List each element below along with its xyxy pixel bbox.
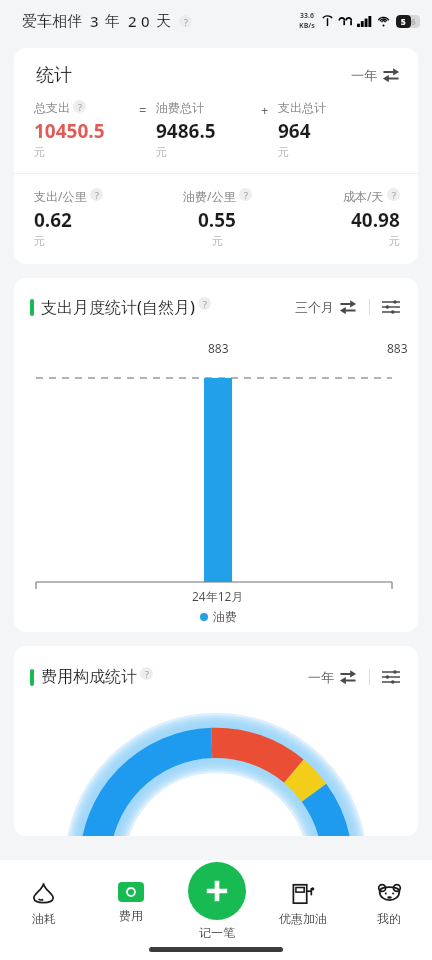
staticText: 883 [208,340,229,356]
button[interactable]: 我的 [346,860,432,926]
staticText: 总支出 [34,100,70,115]
staticText: 33.6 [300,11,314,21]
staticText: 一年 [308,669,334,685]
button[interactable]: 一年 [349,62,402,88]
button[interactable]: 成本/天 [278,188,400,248]
button[interactable]: 一年 [306,664,359,690]
staticText: 油费 [213,609,237,624]
button[interactable]: 支出总计 [278,100,402,159]
staticText: 0.55 [198,207,236,233]
staticText: 2 [128,11,137,31]
staticText: ? [78,101,82,113]
button[interactable]: Help [387,188,400,201]
staticText: 6 [411,16,416,27]
button[interactable]: 油耗 [0,860,87,926]
button[interactable]: Help [73,100,86,113]
staticText: 三个月 [295,299,334,315]
staticText: 5 [401,16,406,27]
staticText: 40.98 [351,207,400,233]
button[interactable]: Help [179,15,192,28]
button[interactable]: 费用 [87,860,174,923]
staticText: 统计 [36,64,72,87]
staticText: 成本/天 [343,188,384,204]
staticText: 元 [34,234,45,248]
button[interactable]: 总支出 [34,100,130,159]
staticText: 10450.5 [34,118,105,144]
staticText: 我的 [377,911,401,926]
staticText: 964 [278,118,311,144]
staticText: 元 [278,145,289,159]
button[interactable]: 记一笔 [174,860,260,938]
button[interactable]: 优惠加油 [260,860,346,926]
other: 记一笔 [188,862,246,920]
staticText: 24年12月 [192,588,244,604]
staticText: 支出总计 [278,100,326,115]
staticText: 元 [212,234,223,248]
staticText: 0 [141,11,150,31]
staticText: 883 [387,340,408,356]
button[interactable]: Filter settings [380,666,402,688]
staticText: ? [145,668,149,680]
staticText: ? [184,16,188,28]
staticText: 油费总计 [156,100,204,115]
staticText: 费用构成统计 [41,667,137,687]
staticText: 费用 [119,908,143,923]
button[interactable]: 三个月 [293,294,359,320]
staticText: KB/s [299,21,315,31]
staticText: ? [203,298,207,310]
staticText: 油费/公里 [183,188,236,204]
staticText: 3 [90,11,99,31]
button[interactable]: Filter settings [380,296,402,318]
staticText: 支出/公里 [34,188,87,204]
staticText: 记一笔 [199,925,235,938]
staticText: 支出月度统计(自然月) [41,296,195,318]
staticText: ? [95,189,99,201]
staticText: 元 [34,145,45,159]
button[interactable]: Help [140,667,153,680]
staticText: 年 [105,12,120,31]
staticText: 元 [389,234,400,248]
staticText: 9486.5 [156,118,216,144]
staticText: 天 [156,12,171,31]
button[interactable]: Help [90,188,103,201]
staticText: 一年 [351,67,377,83]
button[interactable]: Help [239,188,252,201]
button[interactable]: 油费总计 [156,100,252,159]
staticText: 爱车相伴 [22,12,82,31]
button[interactable]: 油费/公里 [156,188,278,248]
button[interactable]: 支出/公里 [34,188,156,248]
staticText: = [139,101,147,119]
button[interactable]: Help [198,297,211,310]
staticText: ? [244,189,248,201]
staticText: 优惠加油 [279,911,327,926]
staticText: + [261,101,269,119]
staticText: 油耗 [32,911,56,926]
staticText: 元 [156,145,167,159]
staticText: 0.62 [34,207,72,233]
staticText: ? [392,189,396,201]
